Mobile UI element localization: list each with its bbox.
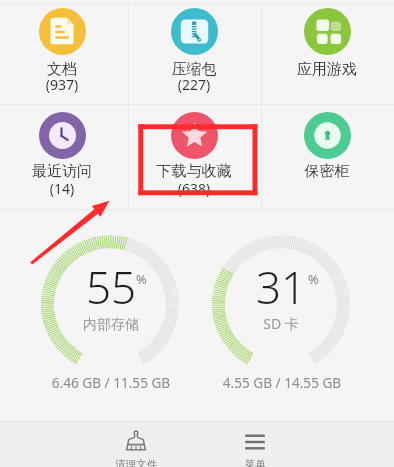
staticText: 55 <box>31 257 191 317</box>
staticText: (638) <box>130 179 258 198</box>
button[interactable]: 保密柜 <box>263 105 391 209</box>
button[interactable]: 下载与收藏 <box>130 105 258 209</box>
staticText: 保密柜 <box>263 162 391 181</box>
button[interactable]: 最近访问 <box>0 105 126 209</box>
staticText: % <box>136 270 147 288</box>
button[interactable]: 文档 <box>0 4 126 104</box>
staticText: 压缩包 <box>130 60 258 79</box>
staticText: 31 <box>201 257 361 317</box>
staticText: 应用游戏 <box>263 60 391 79</box>
button[interactable]: 菜单 <box>210 423 300 467</box>
other: 清理文件 <box>126 430 146 450</box>
staticText: 清理文件 <box>91 458 181 467</box>
button[interactable]: 应用游戏 <box>263 4 391 104</box>
staticText: 下载与收藏 <box>130 162 258 181</box>
button[interactable]: 压缩包 <box>130 4 258 104</box>
staticText: SD 卡 <box>201 314 361 333</box>
staticText: (14) <box>0 179 126 198</box>
staticText: 文档 <box>0 60 126 79</box>
staticText: 菜单 <box>210 458 300 467</box>
staticText: 内部存储 <box>31 316 191 334</box>
staticText: 最近访问 <box>0 162 126 181</box>
staticText: % <box>308 270 319 288</box>
staticText: (937) <box>0 75 126 94</box>
staticText: (227) <box>130 75 258 94</box>
other: 菜单 <box>245 430 265 450</box>
staticText: 6.46 GB / 11.55 GB <box>11 373 211 392</box>
staticText: 4.55 GB / 14.55 GB <box>182 373 382 392</box>
button[interactable]: 清理文件 <box>91 423 181 467</box>
